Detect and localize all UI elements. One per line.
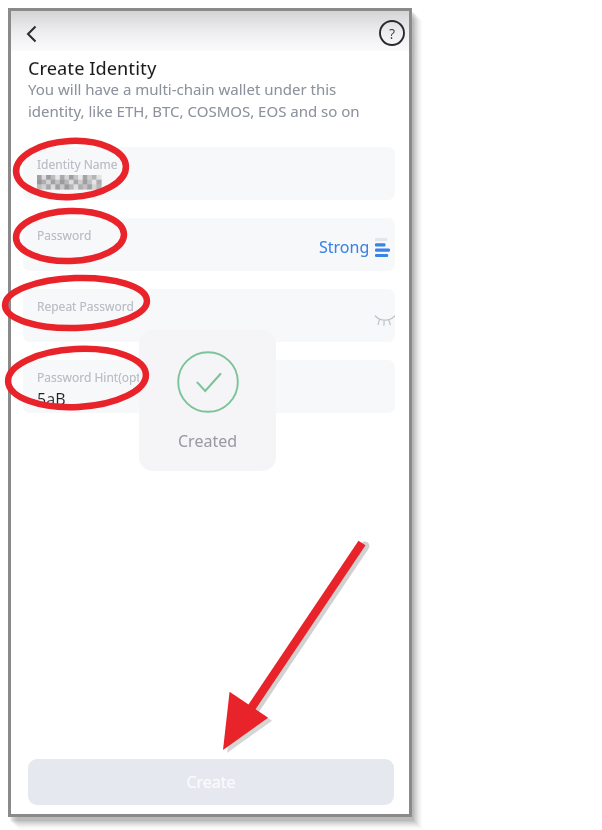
button[interactable]: Password Hint(optional) [23, 360, 395, 413]
staticText: Create Identity [28, 56, 157, 81]
staticText: Created [178, 430, 238, 452]
button[interactable]: Password [23, 218, 395, 271]
button[interactable]: Strong [319, 232, 390, 262]
button[interactable]: Identity Name [23, 147, 395, 200]
staticText: Strong [319, 236, 370, 258]
staticText: Identity Name [37, 156, 118, 172]
button[interactable]: Repeat Password [23, 289, 395, 342]
button[interactable]: Show password [367, 305, 395, 331]
button[interactable]: Back [15, 17, 49, 51]
staticText: ? [389, 24, 396, 43]
staticText: You will have a multi-chain wallet under… [28, 79, 393, 122]
button[interactable]: Help [374, 15, 410, 51]
staticText: Repeat Password [37, 298, 134, 314]
staticText: Create [186, 771, 236, 793]
staticText: Password [37, 227, 92, 243]
staticText: 5aB [37, 388, 66, 410]
staticText: Password Hint(optional) [37, 369, 172, 385]
